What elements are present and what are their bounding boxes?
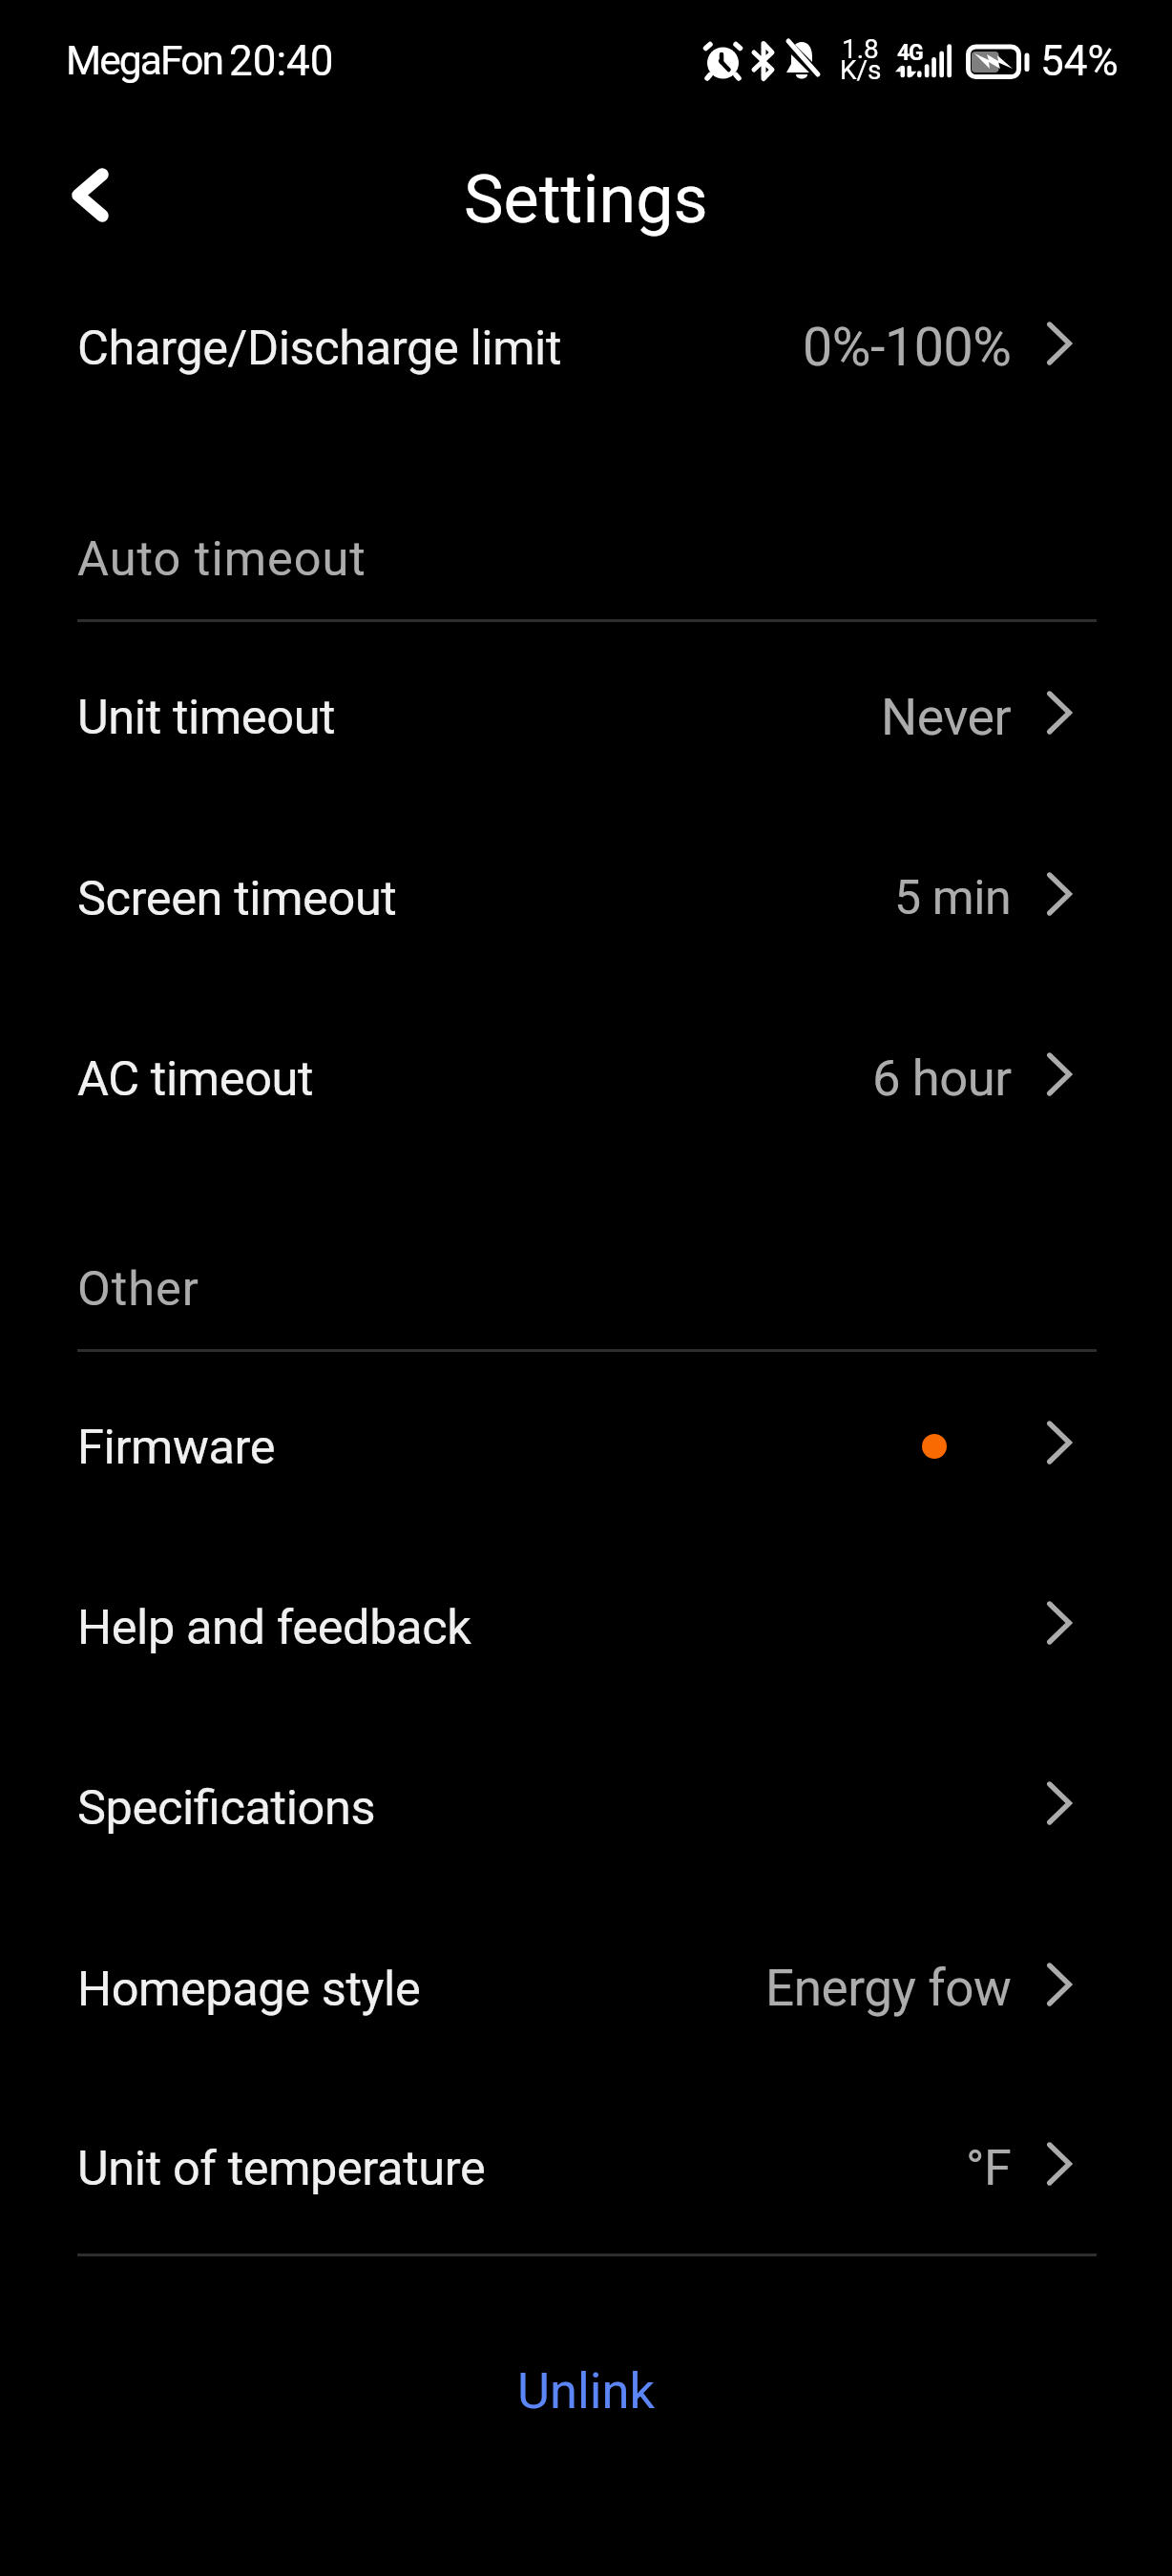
staticText: 20:40 — [229, 36, 334, 86]
staticText: Homepage style — [77, 1961, 421, 2017]
button[interactable]: Help and feedback — [0, 1569, 1172, 1684]
staticText: 5 min — [894, 870, 1012, 926]
button[interactable]: Charge/Discharge limit — [0, 290, 1172, 405]
staticText: 4G — [897, 40, 923, 66]
staticText: Unit of temperature — [77, 2140, 486, 2196]
staticText: Never — [881, 687, 1012, 747]
staticText: °F — [966, 2139, 1012, 2197]
staticText: K/s — [840, 54, 882, 86]
button[interactable]: Back — [38, 143, 143, 248]
staticText: 6 hour — [872, 1049, 1012, 1108]
button[interactable]: Specifications — [0, 1750, 1172, 1864]
staticText: MegaFon — [66, 37, 223, 85]
button[interactable]: Homepage style — [0, 1931, 1172, 2046]
staticText: Help and feedback — [77, 1599, 471, 1655]
staticText: Screen timeout — [77, 870, 397, 926]
staticText: Energy fow — [765, 1959, 1012, 2018]
staticText: Auto timeout — [77, 530, 366, 587]
staticText: Charge/Discharge limit — [77, 320, 562, 376]
button[interactable]: Firmware — [0, 1389, 1172, 1504]
staticText: AC timeout — [77, 1050, 314, 1107]
button[interactable]: Screen timeout — [0, 841, 1172, 955]
staticText: 1.8 — [842, 33, 879, 65]
button[interactable]: Unit of temperature — [0, 2110, 1172, 2225]
staticText: Unlink — [517, 2361, 656, 2420]
staticText: Specifications — [77, 1779, 376, 1836]
staticText: 54% — [1040, 36, 1119, 86]
staticText: Other — [77, 1260, 199, 1317]
staticText: Settings — [464, 160, 708, 239]
button[interactable]: Unit timeout — [0, 659, 1172, 774]
staticText: Firmware — [77, 1419, 276, 1475]
staticText: 0%-100% — [803, 317, 1012, 379]
staticText: Unit timeout — [77, 689, 336, 745]
button[interactable]: Unlink — [0, 2334, 1172, 2448]
button[interactable]: AC timeout — [0, 1021, 1172, 1135]
